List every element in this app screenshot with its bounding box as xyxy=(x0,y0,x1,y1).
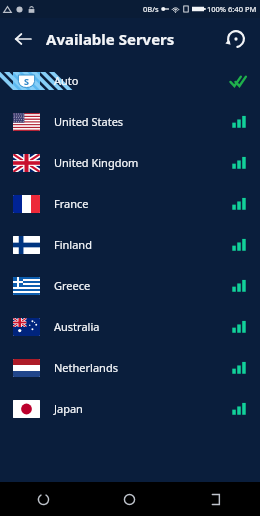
staticText: United Kingdom xyxy=(54,155,139,170)
button[interactable]: Netherlands xyxy=(0,347,260,388)
staticText: Japan xyxy=(54,401,83,416)
button[interactable]: Finland xyxy=(0,224,260,265)
staticText: Finland xyxy=(54,237,92,252)
button[interactable]: Australia xyxy=(0,306,260,347)
staticText: Available Servers xyxy=(46,29,175,49)
button[interactable]: Refresh xyxy=(222,25,250,53)
button[interactable]: Greece xyxy=(0,265,260,306)
button[interactable]: France xyxy=(0,183,260,224)
button[interactable]: Back xyxy=(10,26,36,52)
staticText: Netherlands xyxy=(54,360,118,375)
staticText: France xyxy=(54,196,89,211)
button[interactable]: United Kingdom xyxy=(0,142,260,183)
button[interactable]: Back xyxy=(173,482,260,516)
staticText: United States xyxy=(54,114,124,129)
button[interactable]: Japan xyxy=(0,388,260,429)
staticText: 100% 6:40 PM xyxy=(207,4,257,14)
staticText: 0B/s xyxy=(143,4,159,14)
button[interactable]: Recent apps xyxy=(0,482,86,516)
staticText: Greece xyxy=(54,278,91,293)
staticText: Australia xyxy=(54,319,100,334)
button[interactable]: S xyxy=(0,60,260,101)
staticText: S xyxy=(24,75,29,87)
button[interactable]: Home xyxy=(86,482,173,516)
staticText: Auto xyxy=(54,73,79,88)
button[interactable]: United States xyxy=(0,101,260,142)
